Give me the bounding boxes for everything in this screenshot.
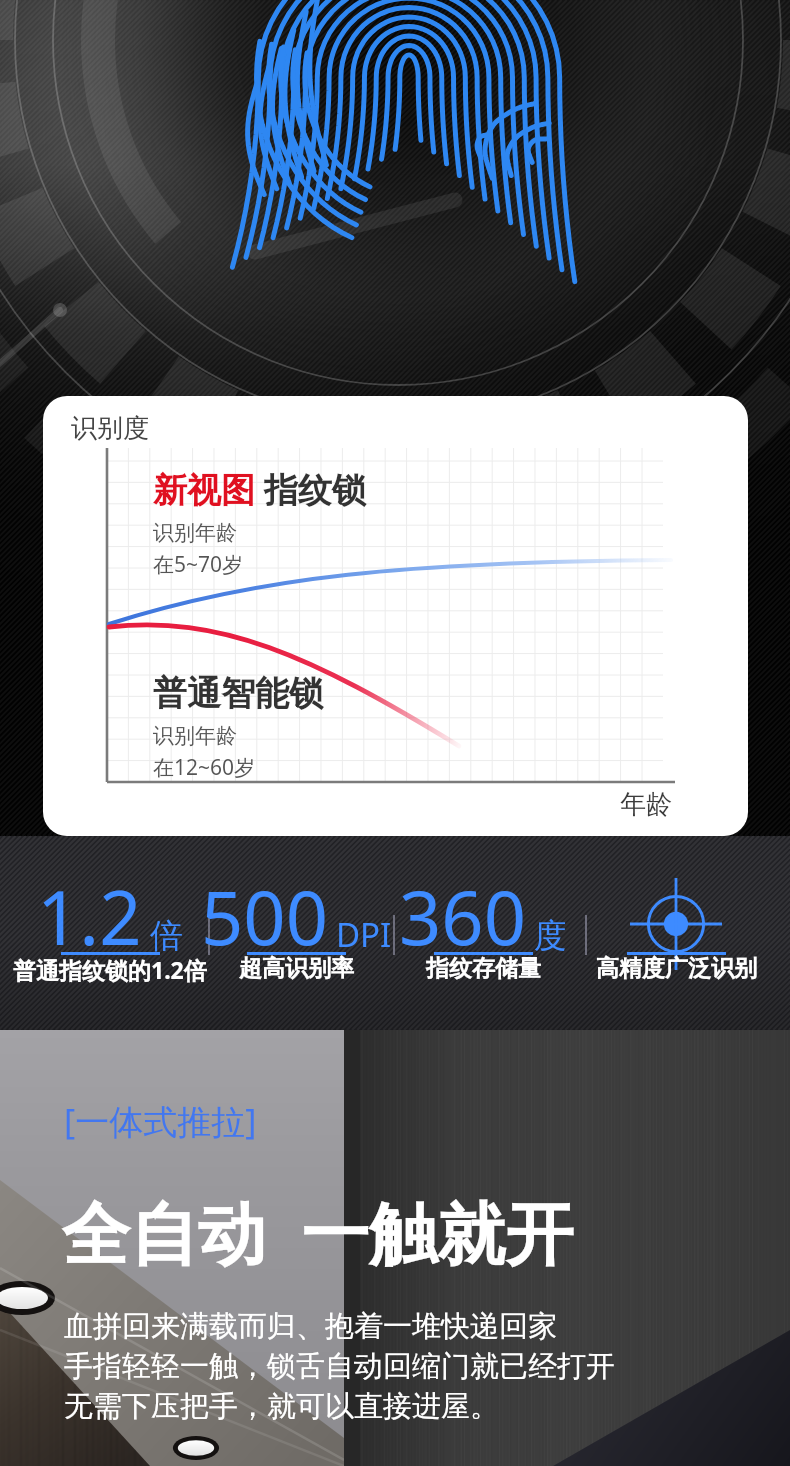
staticText: 全自动 一触就开 [62,1185,574,1278]
staticText: DPI [336,912,392,957]
staticText: 360 [399,866,526,967]
staticText: 血拼回来满载而归、抱着一堆快递回家 手指轻轻一触，锁舌自动回缩门就已经打开 无需… [64,1308,615,1424]
staticText: 500 [201,866,328,967]
button[interactable]: 1.2 [0,866,220,1016]
staticText: 超高识别率 [239,954,354,983]
staticText: 识别度 [71,412,149,445]
staticText: 新视图 指纹锁 [153,466,366,512]
staticText: 普通指纹锁的1.2倍 [13,954,207,985]
staticText: 年龄 [620,788,672,821]
staticText: 指纹存储量 [426,954,541,983]
staticText: 度 [534,915,567,957]
button[interactable]: 360 [373,866,593,1016]
staticText: 1.2 [37,866,142,967]
staticText: 识别年龄 在5~70岁 [153,520,244,579]
staticText: 普通智能锁 [153,672,323,715]
staticText: 高精度广泛识别 [596,954,757,983]
button[interactable]: 高精度广泛识别 [566,866,786,1016]
staticText: 识别年龄 在12~60岁 [153,723,256,782]
button[interactable]: 500 [186,866,406,1016]
staticText: 倍 [150,915,183,957]
staticText: [一体式推拉] [64,1098,257,1144]
